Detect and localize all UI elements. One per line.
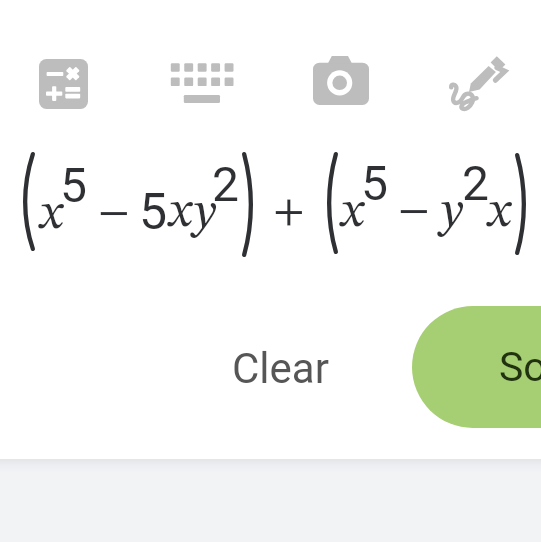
button[interactable]: Solve bbox=[412, 306, 541, 428]
staticText: x bbox=[40, 190, 63, 240]
button[interactable]: Clear bbox=[225, 340, 335, 396]
staticText: 2 bbox=[462, 155, 489, 211]
staticText: 5 bbox=[361, 155, 388, 211]
staticText: x bbox=[169, 188, 192, 238]
button[interactable]: Handwriting bbox=[448, 54, 507, 112]
staticText: y bbox=[194, 189, 217, 239]
staticText: 5 bbox=[139, 183, 168, 242]
button[interactable]: Calculator keypad bbox=[39, 59, 88, 109]
staticText: − bbox=[398, 189, 430, 233]
staticText: 2 bbox=[212, 156, 239, 212]
staticText: x bbox=[488, 188, 511, 238]
staticText: Clear bbox=[232, 344, 329, 393]
staticText: 5 bbox=[60, 157, 87, 213]
staticText: Solve bbox=[499, 343, 541, 391]
staticText: y bbox=[441, 188, 464, 238]
staticText: + bbox=[273, 190, 305, 234]
staticText: x bbox=[341, 188, 364, 238]
staticText: − bbox=[98, 191, 130, 235]
button[interactable]: Camera bbox=[313, 56, 369, 105]
button[interactable]: Keyboard bbox=[170, 63, 234, 104]
